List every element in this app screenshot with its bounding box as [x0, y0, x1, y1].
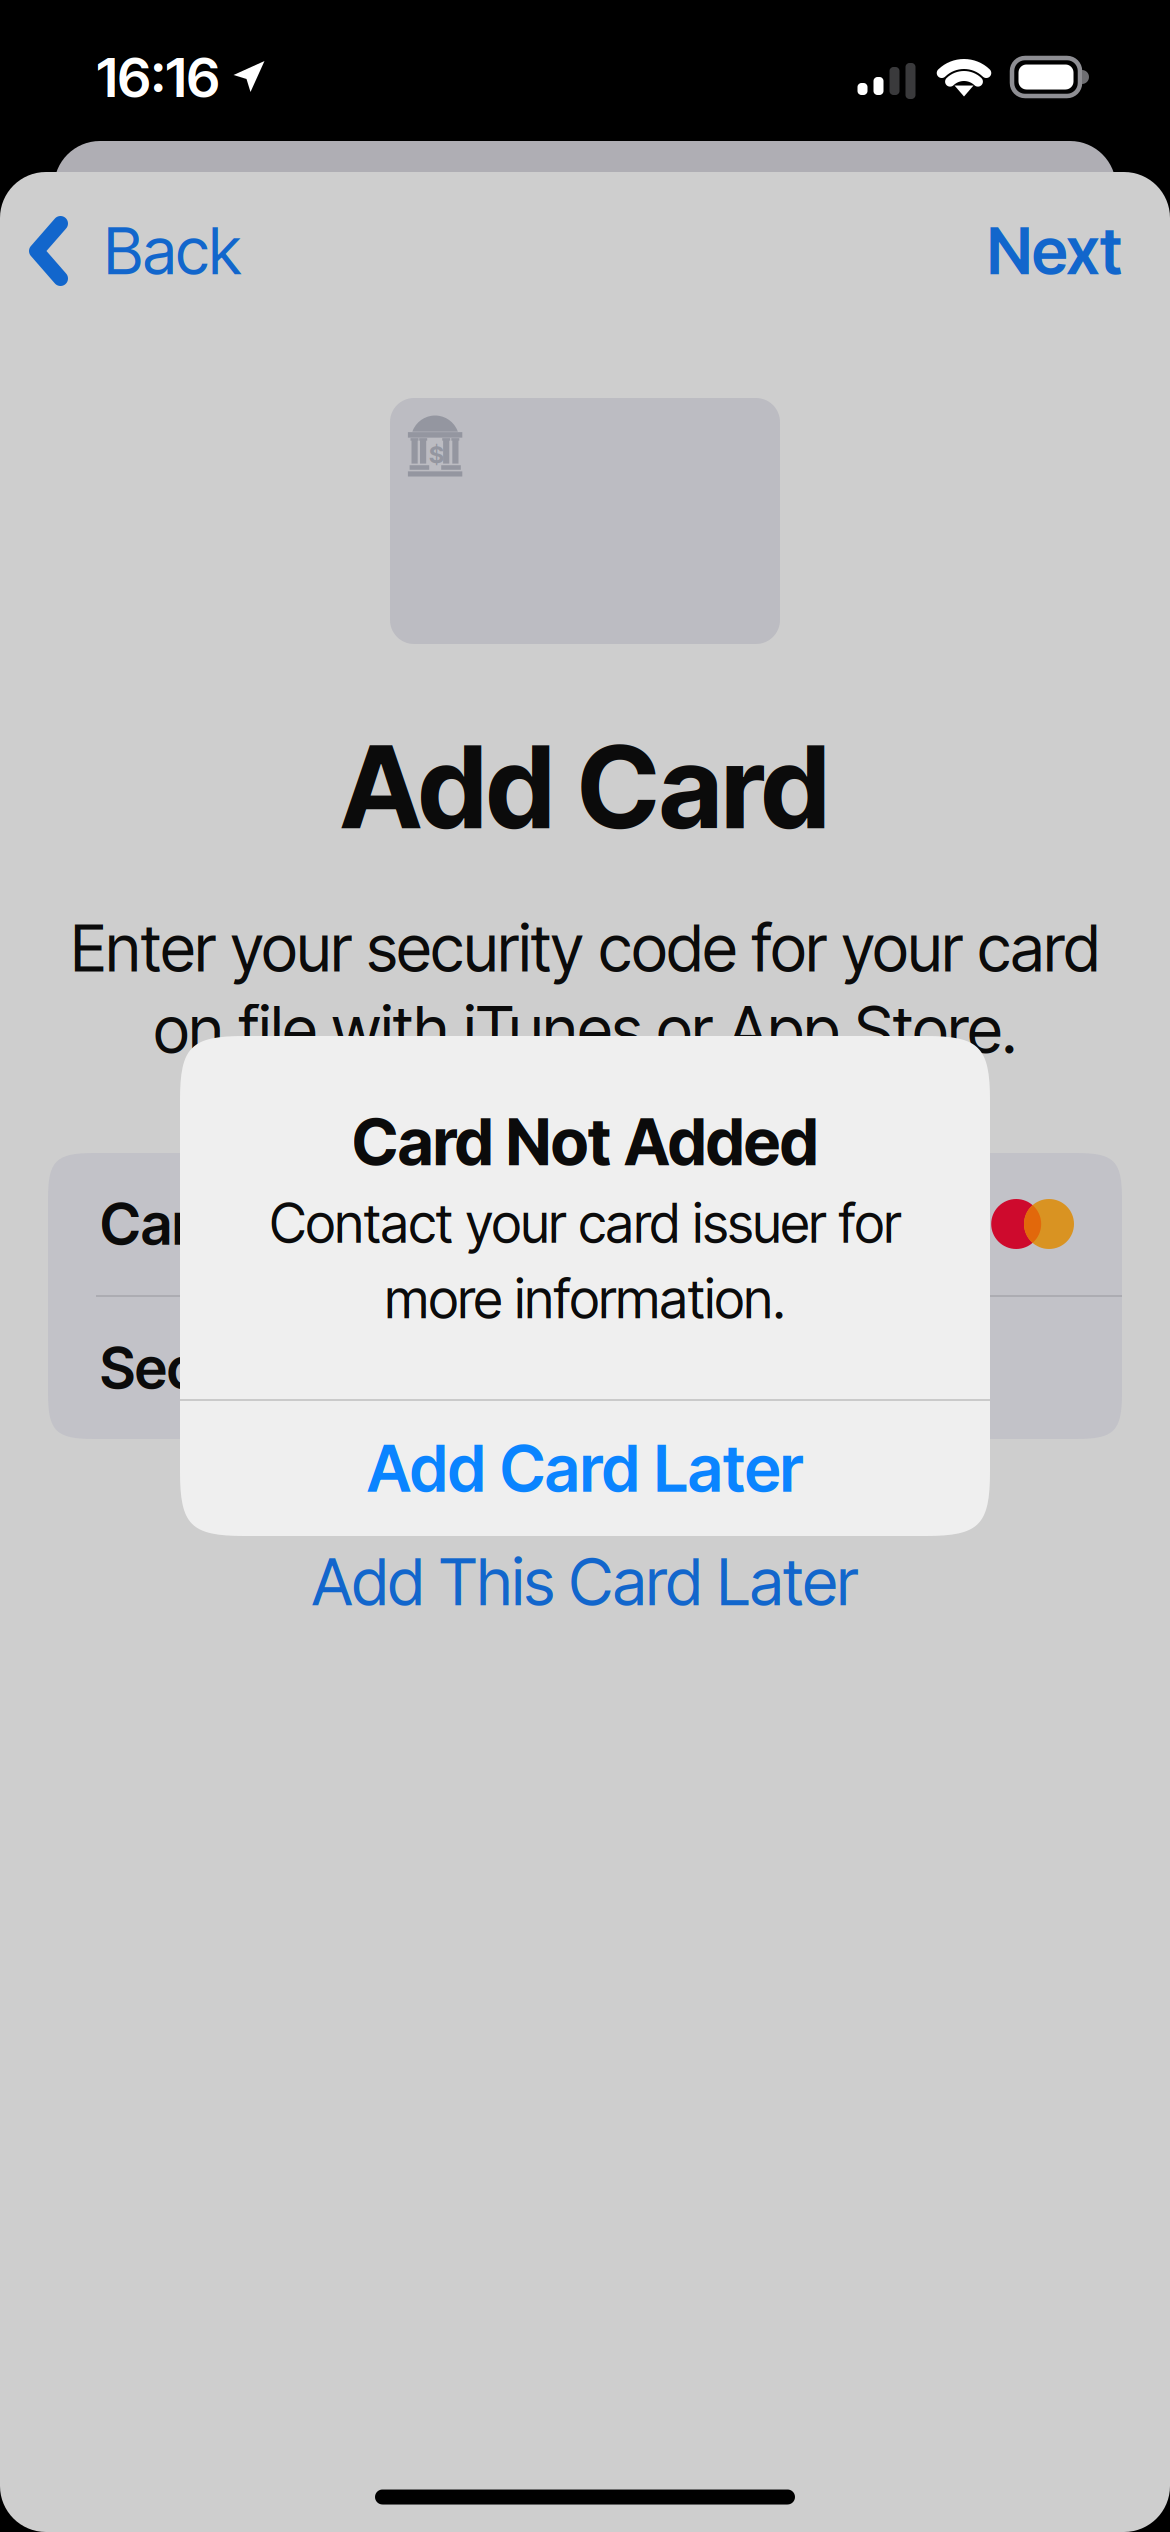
staticText: Card Not Added	[352, 1103, 818, 1181]
staticText: 16:16	[96, 44, 219, 110]
staticText: Add This Card Later	[312, 1543, 858, 1621]
button[interactable]: Back	[0, 191, 340, 311]
staticText: Add Card Later	[367, 1430, 803, 1507]
staticText: $	[429, 440, 444, 469]
button[interactable]: Add Card Later	[180, 1401, 990, 1536]
staticText: Security Code	[100, 1333, 468, 1403]
staticText: Next	[987, 212, 1122, 290]
staticText: Card	[100, 1189, 225, 1259]
staticText: Back	[104, 212, 241, 290]
button[interactable]: Add This Card Later	[195, 1536, 975, 1628]
staticText: Enter your security code for your card o…	[70, 910, 1099, 1068]
button[interactable]: Security Code	[48, 1297, 1122, 1439]
staticText: Add Card	[340, 718, 829, 855]
button[interactable]: Card	[48, 1153, 1122, 1295]
button[interactable]: Next	[870, 191, 1170, 311]
staticText: Contact your card issuer for more inform…	[269, 1191, 900, 1331]
